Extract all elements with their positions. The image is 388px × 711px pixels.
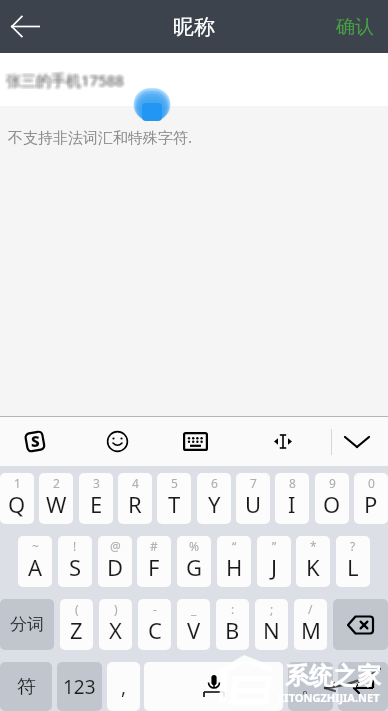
staticText: 张三的手机17588 xyxy=(8,68,126,88)
button[interactable]: Emoji xyxy=(82,417,152,466)
staticText: 。 xyxy=(301,675,320,699)
staticText: 3 xyxy=(93,475,100,491)
staticText: B xyxy=(225,615,240,645)
button[interactable]: ” xyxy=(257,536,291,587)
staticText: ; xyxy=(270,601,274,617)
button[interactable]: 8 xyxy=(275,473,309,524)
staticText: 张三的手机17588 xyxy=(5,70,123,90)
button[interactable]: ? xyxy=(336,536,370,587)
button[interactable]: # xyxy=(137,536,171,587)
button[interactable]: 确认 xyxy=(320,0,388,53)
staticText: 张三的手机17588 xyxy=(6,68,124,88)
button[interactable]: 符 xyxy=(0,662,52,711)
button[interactable]: 1 xyxy=(0,473,34,524)
button[interactable]: ; xyxy=(255,599,288,650)
button[interactable] xyxy=(338,662,388,711)
button[interactable]: 2 xyxy=(39,473,73,524)
staticText: H xyxy=(226,552,243,582)
button[interactable]: 9 xyxy=(315,473,349,524)
button[interactable]: 0 xyxy=(354,473,388,524)
button[interactable]: Back xyxy=(0,0,52,53)
staticText: “ xyxy=(232,538,237,554)
staticText: XITONGZHIJIA.NET xyxy=(277,690,380,705)
button[interactable]: @ xyxy=(98,536,132,587)
button[interactable]: Move cursor xyxy=(248,417,318,466)
staticText: 张三的手机17588 xyxy=(5,69,123,89)
staticText: 张三的手机17588 xyxy=(4,68,122,88)
button[interactable]: 3 xyxy=(79,473,113,524)
staticText: , xyxy=(121,674,127,700)
staticText: : xyxy=(231,601,235,617)
button[interactable]: 。 xyxy=(288,662,333,711)
staticText: ? xyxy=(350,538,356,554)
button[interactable]: % xyxy=(177,536,211,587)
staticText: 张三的手机17588 xyxy=(5,71,123,91)
staticText: 张三的手机17588 xyxy=(7,72,125,92)
staticText: W xyxy=(46,489,67,519)
staticText: 2 xyxy=(53,475,60,491)
staticText: 张三的手机17588 xyxy=(4,72,122,92)
button[interactable]: ( xyxy=(60,599,93,650)
staticText: 确认 xyxy=(336,15,374,39)
button[interactable]: ! xyxy=(58,536,92,587)
staticText: - xyxy=(153,601,157,617)
staticText: 张三的手机17588 xyxy=(7,71,125,91)
staticText: 张三的手机17588 xyxy=(4,70,122,90)
button[interactable]: * xyxy=(296,536,330,587)
staticText: P xyxy=(364,489,378,519)
staticText: K xyxy=(306,552,320,582)
staticText: 系统之家 xyxy=(285,661,381,691)
staticText: 张三的手机17588 xyxy=(7,69,125,89)
staticText: T xyxy=(168,489,181,519)
button[interactable]: ~ xyxy=(18,536,52,587)
staticText: 张三的手机17588 xyxy=(6,72,124,92)
staticText: ~ xyxy=(32,538,39,554)
button[interactable]: 5 xyxy=(157,473,191,524)
button[interactable]: 6 xyxy=(197,473,231,524)
button[interactable]: 4 xyxy=(118,473,152,524)
staticText: E xyxy=(90,489,103,519)
staticText: 6 xyxy=(211,475,218,491)
staticText: L xyxy=(347,552,359,582)
button[interactable]: Sogou input method xyxy=(0,417,70,466)
button[interactable]: : xyxy=(216,599,249,650)
button[interactable]: 分词 xyxy=(0,599,54,650)
staticText: 张三的手机17588 xyxy=(4,69,122,89)
staticText: 张三的手机17588 xyxy=(7,70,125,90)
staticText: N xyxy=(263,615,280,645)
staticText: V xyxy=(187,615,201,645)
button[interactable]: - xyxy=(138,599,171,650)
staticText: G xyxy=(186,552,203,582)
staticText: Y xyxy=(208,489,221,519)
staticText: 昵称 xyxy=(173,14,215,40)
button[interactable] xyxy=(144,662,283,711)
staticText: 分词 xyxy=(10,614,44,635)
button[interactable] xyxy=(333,599,388,650)
staticText: 张三的手机17588 xyxy=(5,72,123,92)
staticText: A xyxy=(28,552,43,582)
staticText: U xyxy=(245,489,262,519)
staticText: 4 xyxy=(132,475,139,491)
button[interactable]: _ xyxy=(177,599,210,650)
staticText: X xyxy=(109,615,122,645)
staticText: 张三的手机17588 xyxy=(8,69,126,89)
staticText: / xyxy=(308,601,313,617)
button[interactable]: 123 xyxy=(57,662,102,711)
staticText: ( xyxy=(75,601,79,617)
staticText: 5 xyxy=(171,475,178,491)
button[interactable]: Keyboard layout xyxy=(160,417,230,466)
staticText: 张三的手机17588 xyxy=(5,68,123,88)
staticText: ) xyxy=(114,601,118,617)
button[interactable]: 7 xyxy=(236,473,270,524)
staticText: 张三的手机17588 xyxy=(4,71,122,91)
button[interactable]: / xyxy=(294,599,327,650)
button[interactable]: ) xyxy=(99,599,132,650)
button[interactable]: , xyxy=(107,662,140,711)
staticText: @ xyxy=(110,538,121,554)
staticText: 张三的手机17588 xyxy=(8,70,126,90)
button[interactable]: “ xyxy=(217,536,251,587)
button[interactable]: 张三的手机17588 xyxy=(0,53,388,106)
button[interactable]: Hide keyboard xyxy=(322,417,388,466)
staticText: 符 xyxy=(17,675,36,699)
staticText: S xyxy=(31,431,40,451)
